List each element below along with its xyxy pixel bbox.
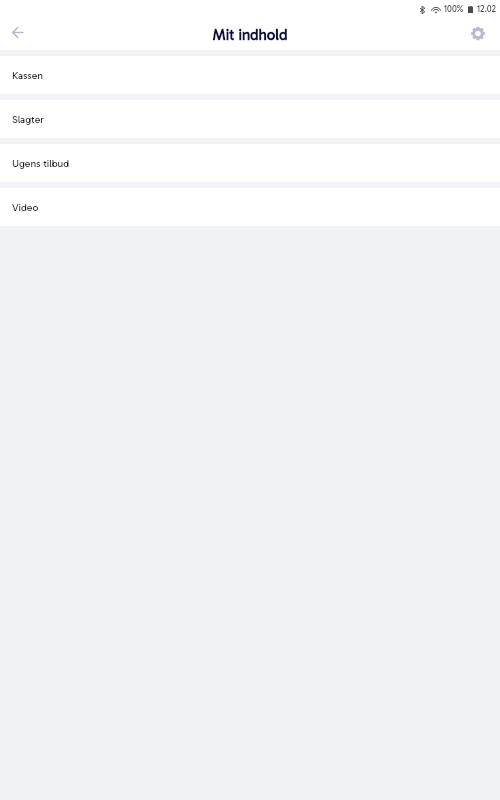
button[interactable]: Ugens tilbud xyxy=(0,144,500,182)
button[interactable]: Slagter xyxy=(0,100,500,138)
staticText: 12.02 xyxy=(477,4,497,15)
staticText: Slagter xyxy=(12,113,44,125)
button[interactable]: Kassen xyxy=(0,56,500,94)
staticText: Kassen xyxy=(12,69,43,81)
button[interactable]: Settings xyxy=(456,17,500,49)
staticText: Video xyxy=(12,201,39,213)
staticText: Ugens tilbud xyxy=(12,157,70,169)
staticText: Mit indhold xyxy=(212,26,288,44)
button[interactable]: Back xyxy=(0,16,35,48)
button[interactable]: Video xyxy=(0,188,500,226)
staticText: 100% xyxy=(444,4,464,15)
